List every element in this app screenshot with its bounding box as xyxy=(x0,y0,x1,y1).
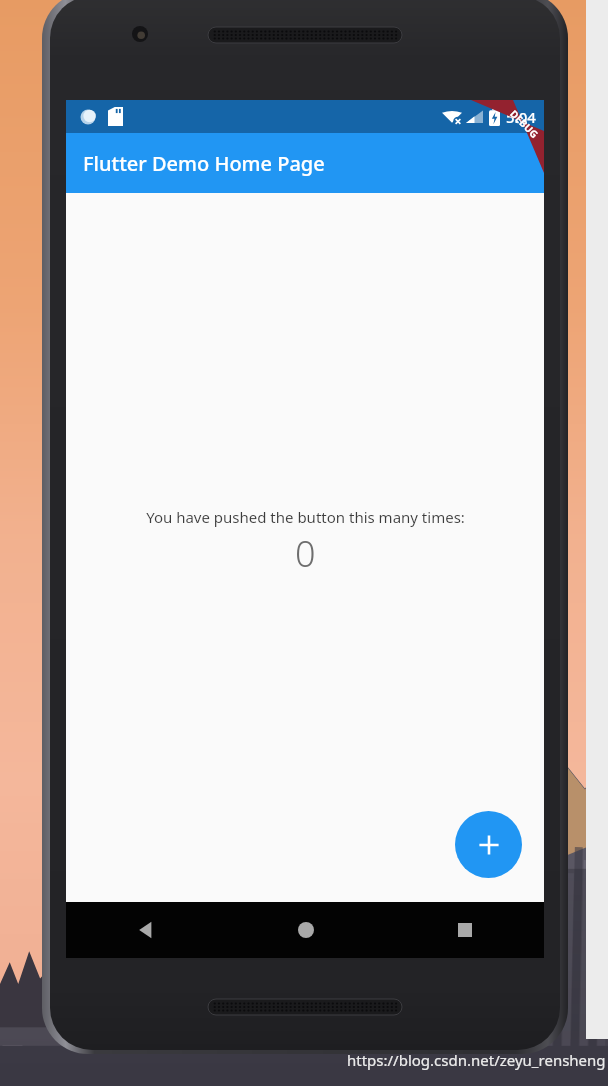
button[interactable]: Recent apps xyxy=(385,902,544,958)
button[interactable]: Increment xyxy=(455,811,522,878)
staticText: DEBUG xyxy=(507,107,542,141)
button[interactable]: Home xyxy=(226,902,385,958)
staticText: You have pushed the button this many tim… xyxy=(146,507,465,527)
button[interactable]: Back xyxy=(66,902,226,958)
staticText: 5:04 xyxy=(506,107,536,127)
staticText: Flutter Demo Home Page xyxy=(83,150,325,177)
staticText: 0 xyxy=(295,529,316,578)
staticText: https://blog.csdn.net/zeyu_rensheng xyxy=(347,1050,606,1070)
